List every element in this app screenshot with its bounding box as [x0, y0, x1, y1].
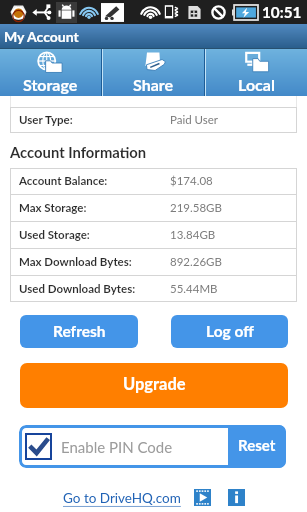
staticText: Enable PIN Code — [61, 438, 173, 456]
staticText: My Account — [4, 28, 79, 45]
staticText: Local — [238, 75, 275, 94]
staticText: Account Information — [10, 143, 147, 161]
staticText: 10:51 — [262, 3, 302, 21]
staticText: Account Balance: — [19, 174, 108, 188]
staticText: Log off — [206, 322, 254, 341]
button[interactable]: Log off — [171, 315, 288, 348]
staticText: Used Storage: — [19, 228, 90, 242]
staticText: 55.44MB — [170, 282, 218, 296]
staticText: $174.08 — [170, 174, 213, 188]
staticText: Reset — [238, 436, 276, 454]
button[interactable]: Storage — [0, 49, 101, 96]
button[interactable]: Enable PIN Code checkbox — [25, 433, 52, 460]
staticText: Used Download Bytes: — [19, 282, 136, 296]
button[interactable]: Play demo video — [194, 489, 211, 506]
staticText: Refresh — [53, 322, 106, 341]
button[interactable]: Information — [228, 489, 245, 506]
staticText: User Type: — [19, 113, 73, 127]
staticText: 219.58GB — [170, 201, 222, 215]
staticText: Upgrade — [123, 374, 186, 394]
button[interactable]: Upgrade — [20, 363, 288, 408]
button[interactable]: Reset — [228, 425, 286, 468]
button[interactable]: Go to DriveHQ.com — [63, 490, 181, 506]
staticText: Max Storage: — [19, 201, 87, 215]
staticText: Storage — [23, 75, 78, 94]
button[interactable]: Refresh — [20, 315, 138, 348]
button[interactable]: Share — [103, 49, 204, 96]
staticText: Max Download Bytes: — [19, 255, 132, 269]
staticText: Share — [133, 75, 174, 94]
staticText: 892.26GB — [170, 255, 222, 269]
staticText: Paid User — [170, 113, 219, 127]
button[interactable]: Local — [206, 49, 307, 96]
staticText: 13.84GB — [170, 228, 216, 242]
